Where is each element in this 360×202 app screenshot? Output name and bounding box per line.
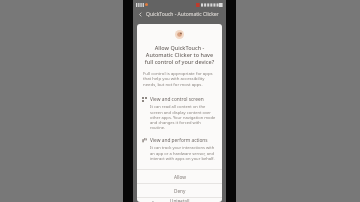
staticText: View and perform actions <box>150 137 208 144</box>
staticText: Allow <box>174 174 186 180</box>
staticText: Uninstall <box>170 198 190 202</box>
staticText: Full control is appropriate for apps tha… <box>143 70 216 88</box>
button[interactable]: Back <box>136 10 145 19</box>
button[interactable]: Allow <box>137 170 222 183</box>
staticText: Deny <box>174 188 186 194</box>
staticText: It can track your interactions with an a… <box>150 145 216 161</box>
button[interactable]: Deny <box>137 184 222 197</box>
staticText: Allow QuickTouch - Automatic Clicker to … <box>143 44 216 65</box>
button[interactable]: Uninstall <box>137 198 222 202</box>
staticText: QuickTouch - Automatic Clicker <box>146 11 219 18</box>
staticText: It can read all content on the screen an… <box>150 104 216 130</box>
staticText: View and control screen <box>150 96 204 103</box>
